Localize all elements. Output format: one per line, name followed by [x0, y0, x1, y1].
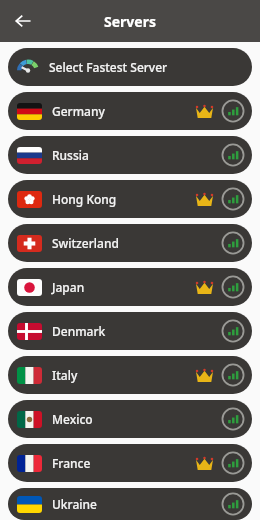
staticText: Germany: [52, 103, 105, 119]
button[interactable]: France: [8, 444, 252, 482]
button[interactable]: Russia: [8, 136, 252, 174]
button[interactable]: Mexico: [8, 400, 252, 438]
staticText: Select Fastest Server: [49, 59, 168, 75]
button[interactable]: Back: [6, 4, 40, 38]
button[interactable]: Select Fastest Server: [8, 48, 252, 86]
staticText: Italy: [52, 367, 78, 383]
staticText: France: [52, 455, 91, 471]
button[interactable]: Hong Kong: [8, 180, 252, 218]
staticText: Ukraine: [52, 496, 97, 512]
button[interactable]: Denmark: [8, 312, 252, 350]
staticText: Russia: [52, 147, 89, 163]
button[interactable]: Japan: [8, 268, 252, 306]
staticText: Mexico: [52, 411, 93, 427]
button[interactable]: Switzerland: [8, 224, 252, 262]
staticText: Denmark: [52, 323, 106, 339]
staticText: Japan: [52, 279, 85, 295]
staticText: Hong Kong: [52, 191, 117, 207]
staticText: Switzerland: [52, 235, 119, 251]
staticText: Servers: [104, 12, 156, 31]
button[interactable]: Ukraine: [8, 488, 252, 520]
button[interactable]: Germany: [8, 92, 252, 130]
button[interactable]: Italy: [8, 356, 252, 394]
